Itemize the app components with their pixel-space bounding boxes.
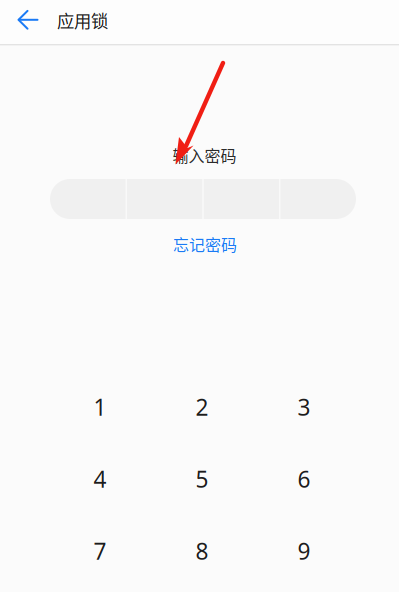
button[interactable]: 忘记密码 xyxy=(150,233,260,255)
staticText: 5 xyxy=(195,464,208,494)
staticText: 8 xyxy=(195,536,208,566)
button[interactable]: 3 xyxy=(253,371,355,443)
button[interactable]: Back xyxy=(7,0,49,40)
staticText: 9 xyxy=(297,536,310,566)
staticText: 3 xyxy=(297,392,310,422)
staticText: 1 xyxy=(93,392,106,422)
staticText: 应用锁 xyxy=(57,7,108,33)
staticText: 输入密码 xyxy=(172,143,236,167)
button[interactable]: 2 xyxy=(151,371,253,443)
staticText: 6 xyxy=(297,464,310,494)
button[interactable]: 5 xyxy=(151,443,253,515)
button[interactable]: 1 xyxy=(49,371,151,443)
staticText: 4 xyxy=(93,464,106,494)
button[interactable]: 6 xyxy=(253,443,355,515)
button[interactable]: 8 xyxy=(151,515,253,587)
button[interactable]: 7 xyxy=(49,515,151,587)
staticText: 忘记密码 xyxy=(173,232,237,256)
staticText: 2 xyxy=(195,392,208,422)
staticText: 7 xyxy=(93,536,106,566)
button[interactable]: 9 xyxy=(253,515,355,587)
button[interactable]: 4 xyxy=(49,443,151,515)
